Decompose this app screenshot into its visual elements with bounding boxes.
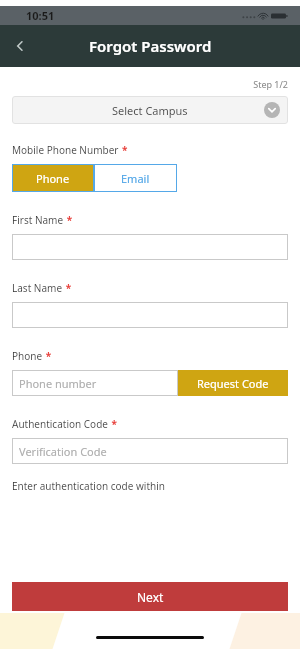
staticText: First Name *: [12, 209, 73, 228]
staticText: Phone *: [12, 345, 52, 364]
staticText: 10:51: [26, 8, 55, 23]
staticText: Authentication Code *: [12, 413, 118, 432]
staticText: Step 1/2: [12, 78, 288, 90]
staticText: Next: [137, 589, 164, 605]
button[interactable]: Next: [12, 582, 288, 611]
button[interactable]: Back: [0, 26, 40, 66]
button[interactable]: Email: [94, 164, 177, 192]
button[interactable]: Phone number: [12, 370, 178, 396]
staticText: Phone number: [19, 376, 97, 391]
staticText: Select Campus: [112, 103, 188, 118]
button[interactable]: [12, 302, 288, 328]
button[interactable]: Phone: [12, 164, 94, 192]
staticText: Request Code: [197, 376, 269, 391]
staticText: Forgot Password: [89, 36, 212, 56]
staticText: Last Name *: [12, 277, 72, 296]
button[interactable]: Select Campus: [12, 96, 288, 124]
staticText: Verification Code: [19, 444, 107, 459]
staticText: Phone: [36, 171, 70, 186]
staticText: Enter authentication code within: [12, 479, 165, 493]
staticText: Email: [121, 171, 150, 186]
staticText: Mobile Phone Number *: [12, 139, 128, 158]
button[interactable]: Request Code: [178, 370, 288, 396]
button[interactable]: [12, 234, 288, 260]
button[interactable]: Verification Code: [12, 438, 288, 464]
